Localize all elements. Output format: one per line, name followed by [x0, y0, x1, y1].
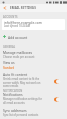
- staticText: Manage notification settings for: [3, 97, 42, 101]
- staticText: Manage mailboxes: [3, 50, 33, 54]
- staticText: Auto fit content: [3, 72, 28, 76]
- staticText: Sync list of personal contacts: [3, 113, 39, 117]
- button[interactable]: info@here-example.com: [2, 19, 65, 30]
- button[interactable]: Back: [0, 4, 9, 12]
- button[interactable]: [0, 107, 67, 118]
- staticText: Notifications: [3, 92, 23, 96]
- staticText: Last synced 10:24 AM: [4, 24, 31, 28]
- staticText: Sync addresses: [3, 108, 27, 112]
- staticText: Shrink email content to fit the: [3, 77, 40, 81]
- staticText: Standard: [3, 66, 15, 70]
- button[interactable]: [0, 49, 67, 59]
- staticText: all email accounts: [3, 101, 25, 105]
- staticText: info@here-example.com: [4, 20, 42, 24]
- button[interactable]: [0, 91, 67, 105]
- staticText: GENERAL: [3, 45, 16, 49]
- staticText: View as: [3, 60, 15, 64]
- button[interactable]: [0, 71, 67, 87]
- staticText: NOTIFICATION: [3, 89, 23, 93]
- staticText: Choose mails per account: [3, 55, 35, 59]
- staticText: screen width. May not work on: [3, 81, 41, 85]
- button[interactable]: [0, 60, 67, 70]
- button[interactable]: Toggle: [54, 97, 61, 102]
- button[interactable]: Add account: [0, 33, 67, 40]
- staticText: ACCOUNTS: [3, 15, 18, 19]
- staticText: some emails: [3, 84, 19, 88]
- button[interactable]: Toggle: [54, 79, 61, 84]
- staticText: EMAIL SETTINGS: [10, 6, 36, 10]
- staticText: Add account: [8, 35, 28, 39]
